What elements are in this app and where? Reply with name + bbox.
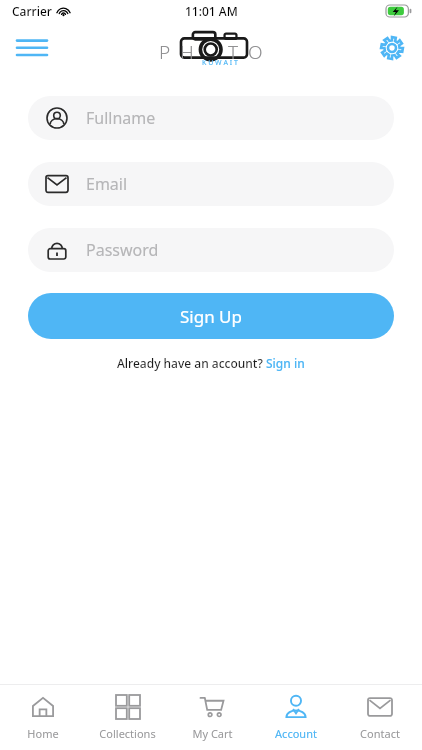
- staticText: Contact: [360, 726, 400, 741]
- staticText: O: [248, 39, 263, 65]
- staticText: H: [180, 39, 194, 65]
- staticText: P: [159, 39, 171, 65]
- button[interactable]: Account: [254, 685, 338, 750]
- staticText: K U W A I T: [202, 58, 238, 68]
- staticText: Password: [86, 239, 159, 261]
- staticText: Carrier: [12, 3, 52, 19]
- staticText: Fullname: [86, 107, 156, 129]
- button[interactable]: Menu: [8, 24, 56, 72]
- button[interactable]: Sign Up: [28, 293, 394, 339]
- button[interactable]: Password: [28, 228, 394, 272]
- button[interactable]: Contact: [338, 685, 422, 750]
- staticText: My Cart: [192, 726, 233, 741]
- staticText: Collections: [99, 726, 156, 741]
- button[interactable]: Fullname: [28, 96, 394, 140]
- staticText: T: [228, 39, 239, 65]
- button[interactable]: Sign in: [266, 355, 305, 371]
- button[interactable]: Settings: [370, 26, 414, 70]
- staticText: Account: [275, 726, 317, 741]
- staticText: Email: [86, 173, 128, 195]
- staticText: Sign in: [266, 355, 305, 371]
- button[interactable]: Collections: [85, 685, 170, 750]
- staticText: Home: [27, 726, 59, 741]
- button[interactable]: Email: [28, 162, 394, 206]
- staticText: 11:01 AM: [185, 3, 238, 19]
- staticText: Already have an account?: [117, 355, 266, 371]
- button[interactable]: Home: [0, 685, 85, 750]
- staticText: Sign Up: [180, 305, 242, 328]
- button[interactable]: My Cart: [170, 685, 254, 750]
